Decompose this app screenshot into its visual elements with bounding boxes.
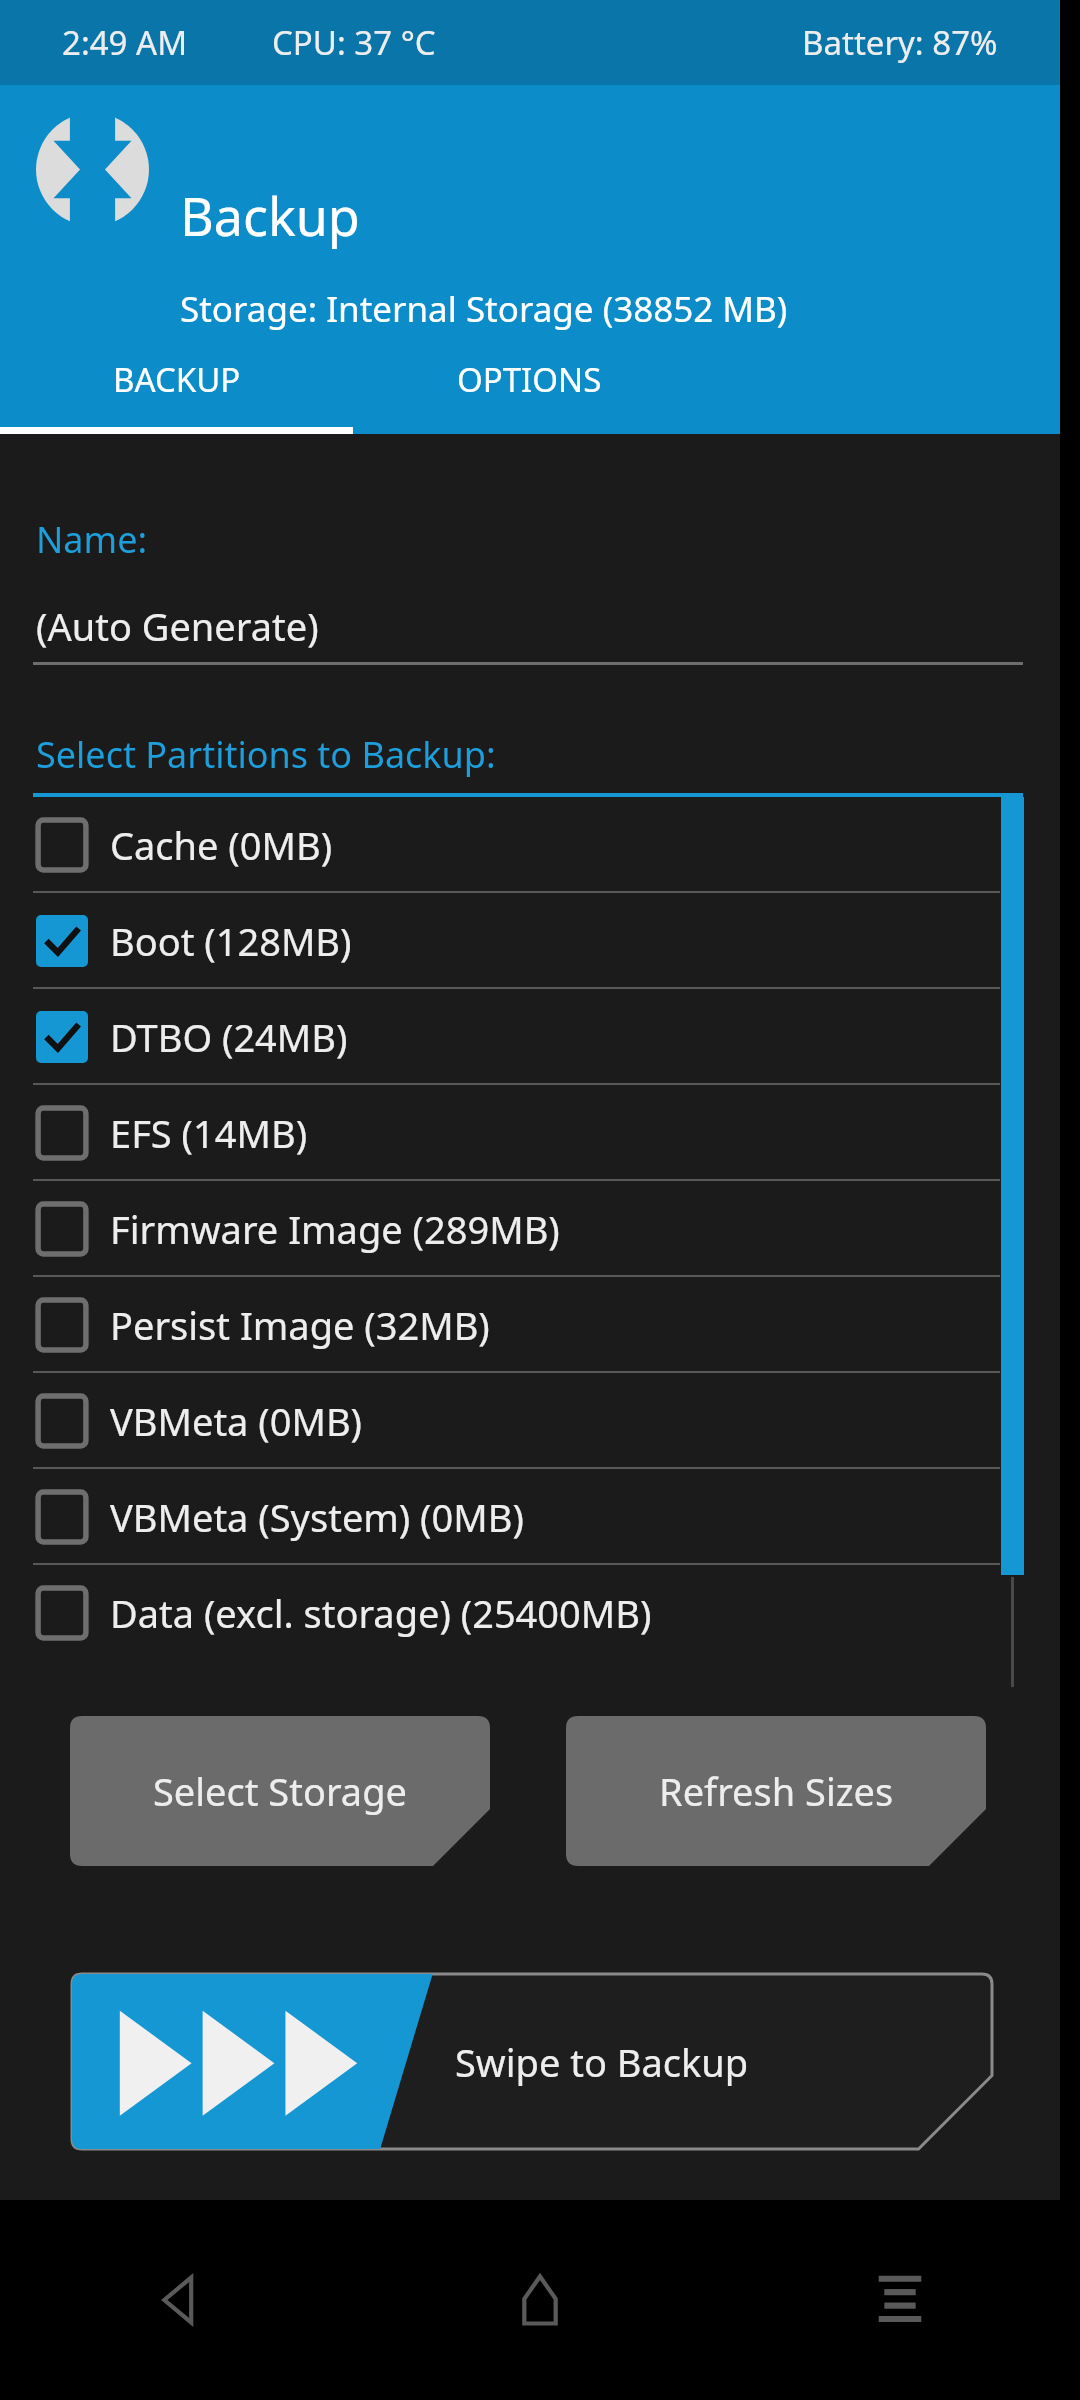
staticText: Cache (0MB) [110,819,333,871]
staticText: CPU: 37 °C [272,20,436,65]
button[interactable]: BACKUP [0,324,353,434]
button[interactable]: Select Storage [70,1716,490,1866]
staticText: Persist Image (32MB) [110,1299,490,1351]
staticText: Data (excl. storage) (25400MB) [110,1587,652,1639]
staticText: EFS (14MB) [110,1107,308,1159]
staticText: Backup [180,180,360,251]
staticText: VBMeta (System) (0MB) [110,1491,524,1543]
staticText: Refresh Sizes [659,1765,894,1817]
button[interactable]: Recent apps [720,2200,1080,2400]
button[interactable]: EFS (14MB) [0,1085,1000,1181]
staticText: Storage: Internal Storage (38852 MB) [180,285,788,333]
button[interactable]: DTBO (24MB) [0,989,1000,1085]
staticText: VBMeta (0MB) [110,1395,363,1447]
button[interactable]: Home [360,2200,720,2400]
staticText: Battery: 87% [802,20,998,65]
button[interactable]: Boot (128MB) [0,893,1000,989]
staticText: Name: [36,515,148,564]
button[interactable]: Cache (0MB) [0,797,1000,893]
staticText: Firmware Image (289MB) [110,1203,560,1255]
staticText: 2:49 AM [62,20,188,65]
button[interactable]: OPTIONS [353,324,706,434]
staticText: Select Storage [153,1765,407,1817]
button[interactable]: VBMeta (System) (0MB) [0,1469,1000,1565]
button[interactable]: Firmware Image (289MB) [0,1181,1000,1277]
staticText: Boot (128MB) [110,915,352,967]
button[interactable]: Data (excl. storage) (25400MB) [0,1565,1000,1661]
staticText: Swipe to Backup [455,2036,749,2088]
staticText: DTBO (24MB) [110,1011,348,1063]
staticText: (Auto Generate) [36,600,319,652]
staticText: OPTIONS [457,357,602,402]
button[interactable]: Back [0,2200,360,2400]
staticText: BACKUP [113,357,241,402]
staticText: Select Partitions to Backup: [36,730,496,779]
button[interactable]: Persist Image (32MB) [0,1277,1000,1373]
button[interactable]: Swipe to Backup [72,1974,992,2149]
button[interactable]: Refresh Sizes [566,1716,986,1866]
button[interactable]: VBMeta (0MB) [0,1373,1000,1469]
